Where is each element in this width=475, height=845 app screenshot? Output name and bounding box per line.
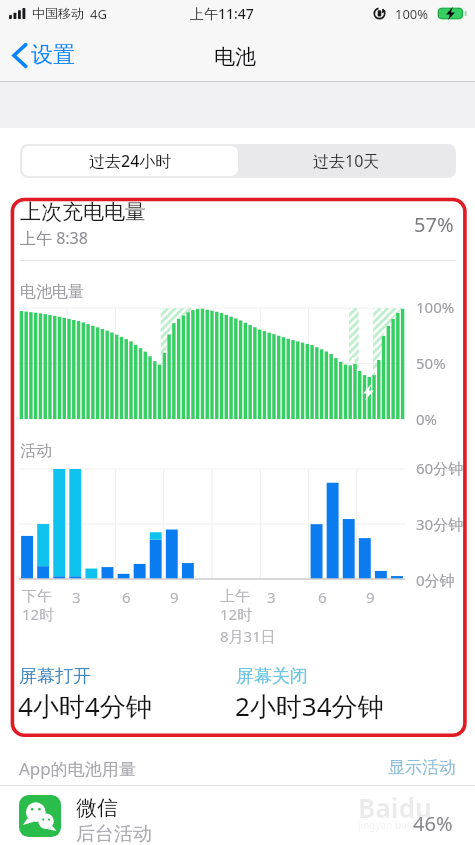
staticText: 8月31日 xyxy=(220,626,276,646)
staticText: App的电池用量 xyxy=(19,757,136,780)
staticText: 4小时4分钟 xyxy=(18,688,152,724)
button[interactable]: 显示活动 xyxy=(385,755,459,780)
button[interactable]: 设置 xyxy=(7,34,81,76)
staticText: 12时 xyxy=(220,604,253,624)
staticText: 3 xyxy=(72,587,81,607)
staticText: 0分钟 xyxy=(416,570,455,590)
staticText: 微信 xyxy=(76,795,118,821)
staticText: 100% xyxy=(395,5,429,23)
staticText: 6 xyxy=(122,587,131,607)
staticText: 100% xyxy=(416,297,455,317)
staticText: jingyan.baidu.com xyxy=(358,818,445,832)
staticText: 活动 xyxy=(20,441,52,461)
staticText: 屏幕关闭 xyxy=(236,665,308,688)
staticText: 6 xyxy=(318,587,327,607)
other: Rotation lock xyxy=(373,7,386,20)
staticText: 过去10天 xyxy=(313,150,380,172)
staticText: 设置 xyxy=(31,41,75,69)
staticText: 9 xyxy=(366,587,375,607)
staticText: 12时 xyxy=(22,604,55,624)
staticText: 30分钟 xyxy=(416,514,464,534)
button[interactable]: 微信 xyxy=(0,786,475,845)
staticText: 上午 8:38 xyxy=(20,227,88,249)
staticText: 上午 xyxy=(220,587,250,606)
button[interactable]: 过去10天 xyxy=(238,146,454,176)
staticText: 中国移动 xyxy=(32,5,84,21)
staticText: 后台活动 xyxy=(76,822,152,845)
staticText: 0% xyxy=(416,409,438,429)
staticText: 上次充电电量 xyxy=(20,199,146,225)
staticText: 4G xyxy=(90,5,107,23)
staticText: 3 xyxy=(267,587,276,607)
button[interactable]: 过去24小时 xyxy=(22,146,238,176)
staticText: 上午11:47 xyxy=(190,4,254,23)
staticText: 屏幕打开 xyxy=(19,665,91,688)
staticText: 57% xyxy=(414,211,454,238)
staticText: 46% xyxy=(413,810,453,837)
staticText: 60分钟 xyxy=(416,458,464,478)
staticText: Baidu xyxy=(358,790,432,825)
staticText: 2小时34分钟 xyxy=(235,688,384,724)
staticText: 电池 xyxy=(214,44,256,70)
staticText: 下午 xyxy=(22,587,52,606)
staticText: 50% xyxy=(416,353,446,373)
staticText: 电池电量 xyxy=(20,282,84,302)
staticText: 过去24小时 xyxy=(89,150,172,172)
staticText: 显示活动 xyxy=(388,757,456,778)
staticText: 9 xyxy=(170,587,179,607)
